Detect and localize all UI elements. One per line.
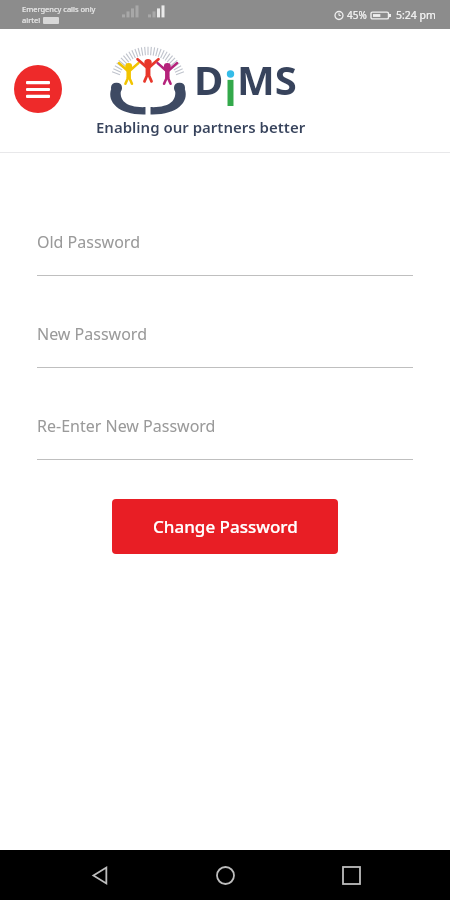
button[interactable]: Open navigation menu (14, 65, 62, 113)
button[interactable]: Recent apps (324, 850, 378, 900)
staticText: Old Password (37, 231, 140, 253)
button[interactable]: New Password (37, 323, 413, 368)
staticText: D (194, 52, 224, 106)
button[interactable]: Old Password (37, 231, 413, 276)
button[interactable]: Re-Enter New Password (37, 415, 413, 460)
staticText: New Password (37, 323, 147, 345)
button[interactable]: Back (72, 850, 126, 900)
staticText: Enabling our partners better (96, 117, 306, 137)
button[interactable]: Change Password (112, 499, 338, 554)
staticText: Re-Enter New Password (37, 415, 216, 437)
staticText: 5:24 pm (396, 8, 436, 22)
staticText: airtel (22, 15, 41, 25)
staticText: Change Password (153, 515, 298, 538)
staticText: 45% (347, 8, 367, 22)
staticText: Emergency calls only (22, 4, 96, 14)
button[interactable]: Home (198, 850, 252, 900)
staticText: MS (237, 52, 297, 106)
